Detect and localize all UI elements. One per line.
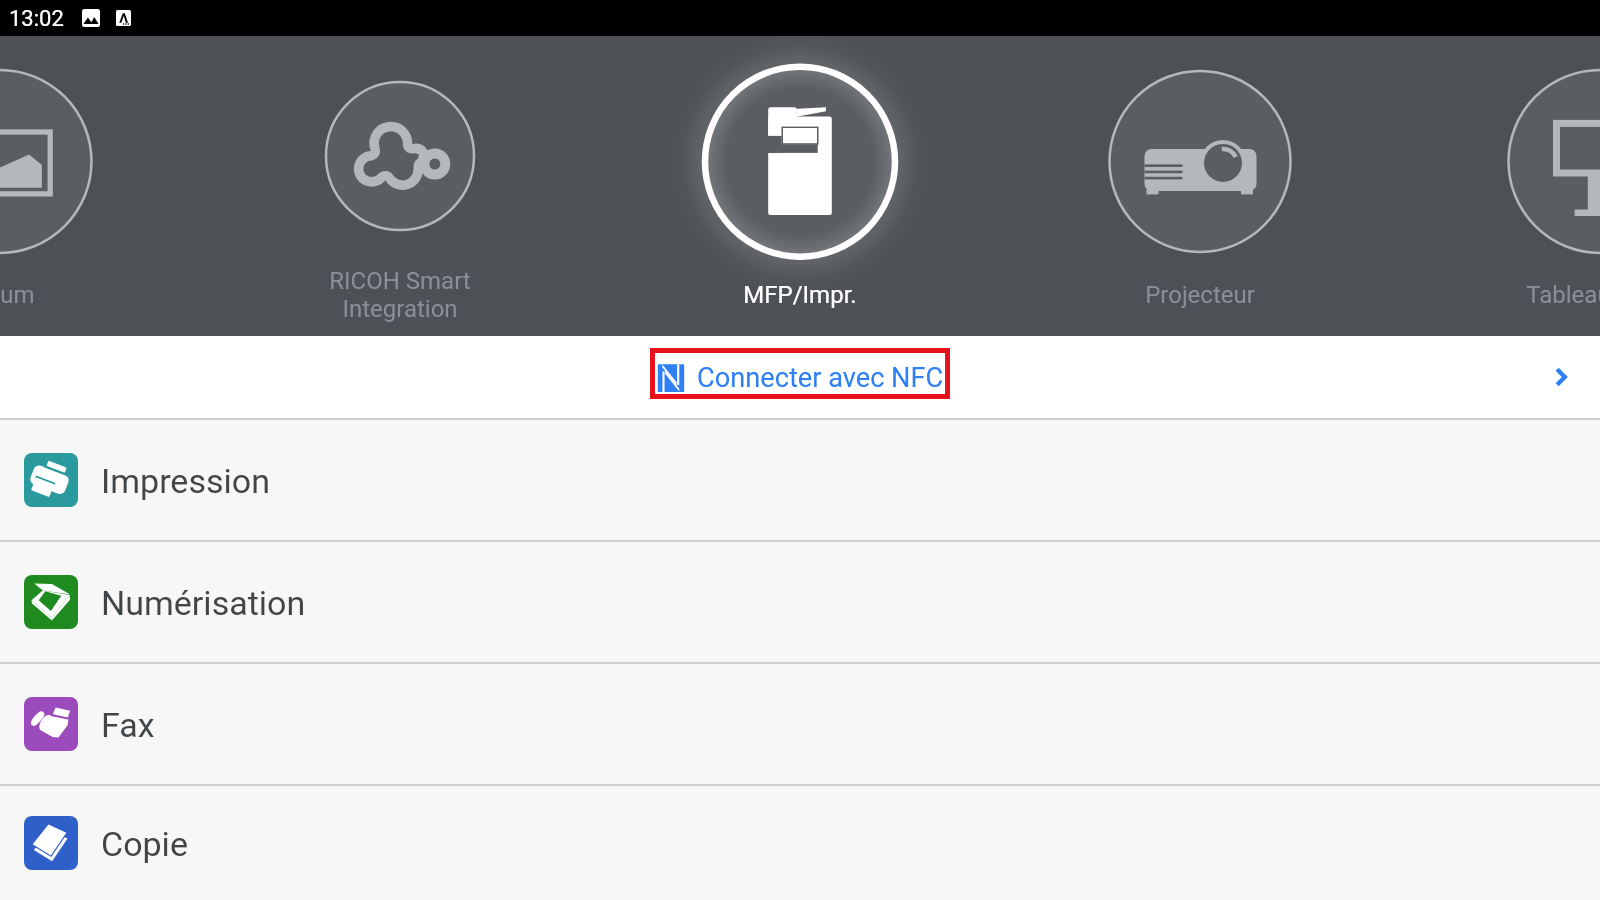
button[interactable]: Afficher plus [1536, 353, 1584, 401]
button[interactable]: Projecteur [1035, 36, 1365, 336]
staticText: Album [0, 281, 35, 309]
button[interactable]: Numérisation [0, 542, 1600, 662]
staticText: MFP/Impr. [743, 281, 857, 309]
staticText: Projecteur [1145, 281, 1255, 309]
staticText: Connecter avec NFC [697, 362, 944, 394]
staticText: 13:02 [9, 6, 64, 32]
button[interactable]: RICOH Smart Integration [235, 36, 565, 336]
button[interactable]: Copie [0, 786, 1600, 900]
staticText: Fax [101, 705, 155, 745]
button[interactable]: MFP/Impr. [635, 36, 965, 336]
staticText: Copie [101, 824, 188, 864]
button[interactable]: Fax [0, 664, 1600, 784]
button[interactable]: Album [0, 36, 165, 336]
staticText: Numérisation [101, 583, 306, 623]
staticText: Impression [101, 461, 270, 501]
button[interactable]: Impression [0, 420, 1600, 540]
button[interactable]: Tableau blanc [1435, 36, 1600, 336]
button[interactable]: Connecter avec NFC [0, 336, 1600, 418]
staticText: RICOH Smart Integration [329, 267, 471, 323]
staticText: Tableau blanc [1526, 281, 1600, 309]
